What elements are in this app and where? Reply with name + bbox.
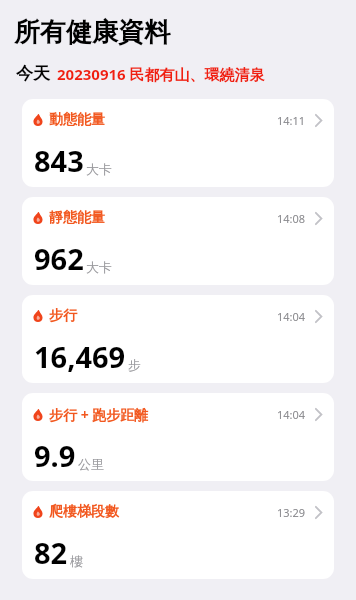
- other: Flame: [32, 114, 44, 126]
- other: Open details: [315, 212, 322, 225]
- staticText: 82: [34, 533, 68, 572]
- staticText: 9.9: [34, 436, 76, 475]
- other: Flame: [32, 506, 44, 518]
- staticText: 步行 + 跑步距離: [49, 405, 149, 424]
- staticText: 靜態能量: [49, 209, 105, 227]
- button[interactable]: Flame: [22, 295, 334, 383]
- other: Open details: [315, 310, 322, 323]
- staticText: 14:04: [277, 309, 306, 324]
- staticText: 843: [34, 141, 84, 180]
- staticText: 公里: [78, 456, 104, 472]
- staticText: 爬樓梯段數: [49, 503, 119, 521]
- staticText: 16,469: [34, 337, 126, 376]
- staticText: 大卡: [86, 161, 112, 177]
- staticText: 步: [128, 357, 141, 373]
- staticText: 今天: [16, 63, 50, 84]
- other: Open details: [315, 408, 322, 421]
- staticText: 962: [34, 239, 84, 278]
- other: Open details: [315, 114, 322, 127]
- staticText: 13:29: [277, 505, 306, 520]
- button[interactable]: Flame: [22, 491, 334, 579]
- staticText: 所有健康資料: [14, 16, 170, 49]
- other: Flame: [32, 310, 44, 322]
- button[interactable]: Flame: [22, 393, 334, 481]
- staticText: 大卡: [86, 259, 112, 275]
- button[interactable]: Flame: [22, 99, 334, 187]
- button[interactable]: Flame: [22, 197, 334, 285]
- staticText: 14:08: [277, 211, 306, 226]
- staticText: 步行: [49, 307, 77, 325]
- staticText: 樓: [70, 553, 83, 569]
- other: Flame: [32, 409, 44, 421]
- staticText: 動態能量: [49, 111, 105, 129]
- other: Flame: [32, 212, 44, 224]
- staticText: 14:04: [277, 407, 306, 422]
- other: Open details: [315, 506, 322, 519]
- staticText: 14:11: [277, 113, 306, 128]
- staticText: 20230916 民都有山、環繞清泉: [57, 64, 265, 84]
